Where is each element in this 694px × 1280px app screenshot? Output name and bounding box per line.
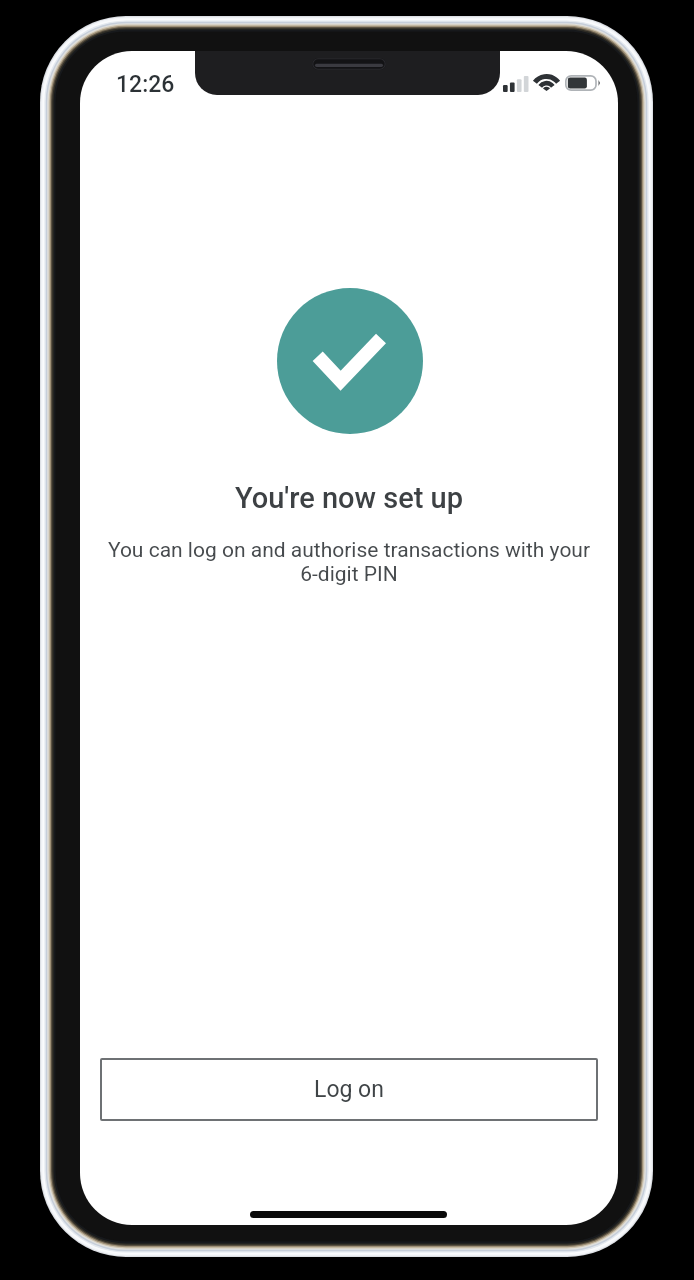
staticText: You can log on and authorise transaction… — [80, 538, 618, 586]
other: Cellular signal strength — [503, 76, 528, 92]
other: Home indicator — [250, 1211, 447, 1218]
other: Battery level — [565, 75, 600, 91]
button[interactable]: Log on — [100, 1058, 598, 1121]
staticText: You're now set up — [80, 481, 618, 515]
staticText: Log on — [314, 1076, 384, 1103]
other: Wi-Fi connected — [535, 74, 558, 91]
staticText: 12:26 — [116, 71, 175, 98]
